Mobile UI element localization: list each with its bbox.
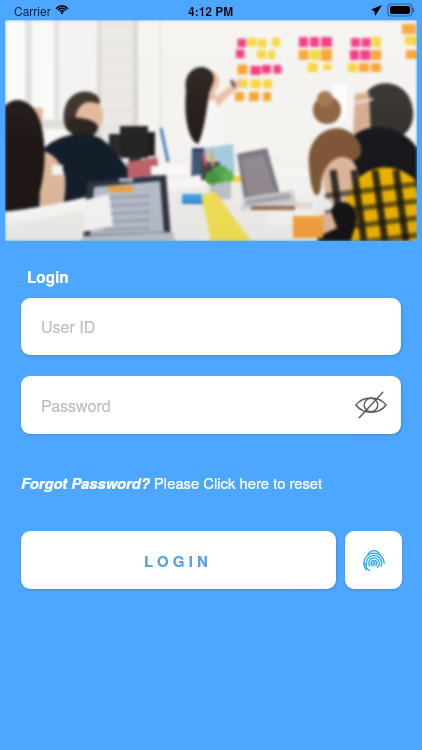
staticText: Carrier [14, 2, 51, 19]
staticText: Forgot Password? [21, 472, 154, 493]
button[interactable]: LOGIN [21, 531, 336, 589]
button[interactable]: Fingerprint login [345, 531, 402, 589]
staticText: 4:12 PM [188, 2, 234, 19]
staticText: User ID [41, 315, 96, 338]
button[interactable]: User ID [21, 298, 401, 355]
button[interactable]: Show password [353, 387, 389, 423]
staticText: Please Click here to reset [154, 472, 323, 493]
button[interactable]: Password [21, 376, 401, 434]
staticText: Login [27, 266, 69, 288]
staticText: LOGIN [144, 550, 213, 571]
staticText: Password [41, 394, 111, 417]
